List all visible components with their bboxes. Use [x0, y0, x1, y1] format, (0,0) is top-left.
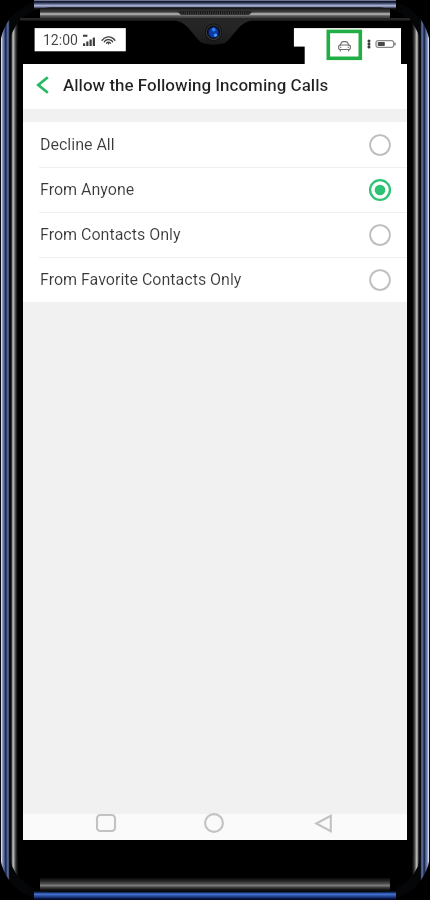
staticText: From Favorite Contacts Only — [40, 270, 242, 289]
staticText: From Contacts Only — [40, 225, 181, 244]
button[interactable]: From Favorite Contacts Only — [23, 257, 407, 302]
staticText: Allow the Following Incoming Calls — [63, 75, 329, 95]
staticText: Decline All — [40, 135, 115, 154]
button[interactable]: Driving mode — [336, 37, 352, 53]
button[interactable]: From Contacts Only — [23, 212, 407, 257]
staticText: 12:00 — [43, 32, 78, 48]
button[interactable]: Decline All — [23, 122, 407, 167]
button[interactable]: Back — [304, 810, 344, 836]
button[interactable]: Back — [23, 65, 63, 105]
button[interactable]: Home — [194, 810, 234, 836]
button[interactable]: From Anyone — [23, 167, 407, 212]
staticText: From Anyone — [40, 180, 135, 199]
button[interactable]: Recent apps — [86, 810, 126, 836]
